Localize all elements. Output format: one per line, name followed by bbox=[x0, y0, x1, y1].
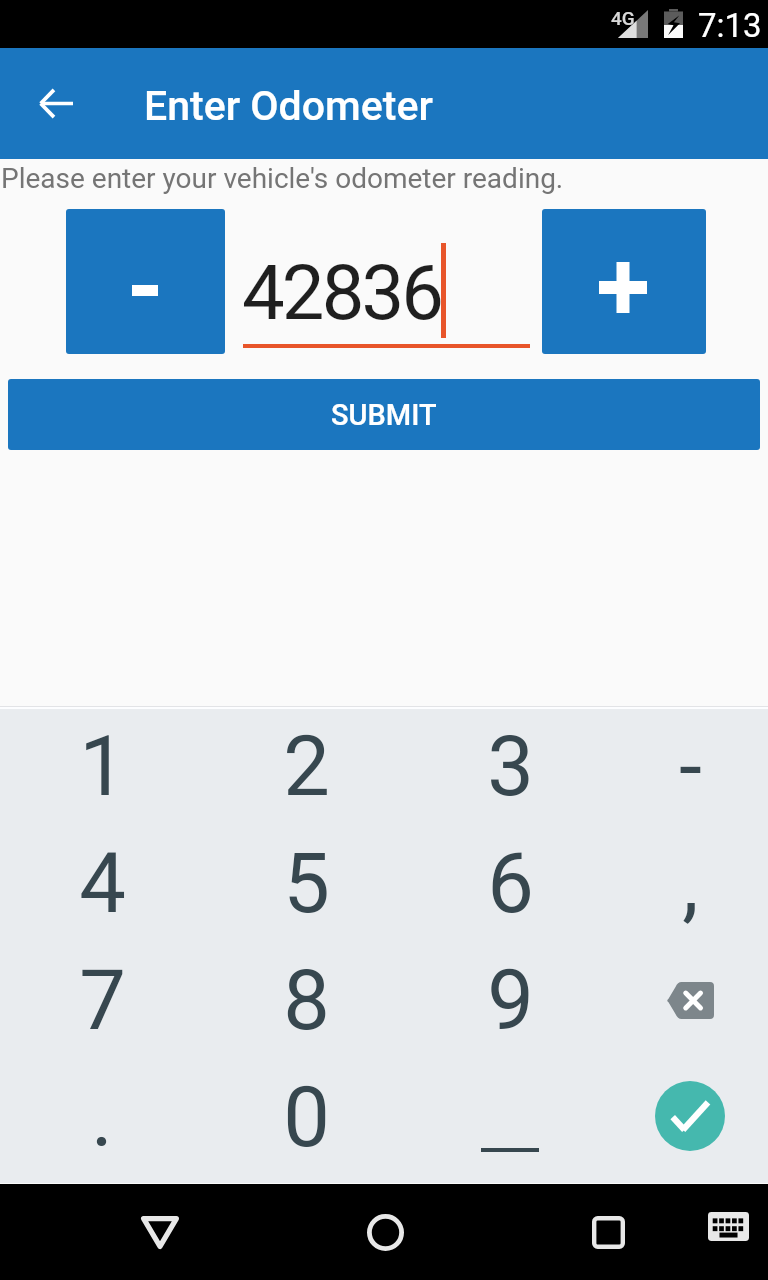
button[interactable] bbox=[408, 827, 594, 945]
button[interactable] bbox=[408, 709, 594, 827]
button[interactable] bbox=[594, 827, 768, 945]
staticText: 8 bbox=[283, 952, 330, 1049]
button[interactable] bbox=[204, 945, 408, 1063]
staticText: 5 bbox=[283, 835, 330, 932]
button[interactable] bbox=[0, 709, 204, 827]
button[interactable]: Decrease bbox=[66, 209, 225, 354]
button[interactable] bbox=[594, 945, 768, 1063]
button[interactable] bbox=[0, 827, 204, 945]
staticText: Please enter your vehicle's odometer rea… bbox=[1, 162, 564, 195]
staticText: - bbox=[679, 718, 702, 815]
staticText: 6 bbox=[487, 835, 534, 932]
staticText: 3 bbox=[487, 718, 534, 815]
staticText: . bbox=[91, 1069, 113, 1166]
button[interactable]: Switch keyboard bbox=[688, 1184, 768, 1264]
button[interactable]: Recent apps bbox=[558, 1184, 658, 1280]
staticText: , bbox=[682, 835, 699, 932]
button[interactable] bbox=[408, 1063, 594, 1183]
button[interactable]: Backspace bbox=[666, 982, 714, 1019]
staticText: Enter Odometer bbox=[144, 82, 433, 130]
button[interactable]: Back bbox=[110, 1184, 210, 1280]
staticText: 2 bbox=[283, 718, 330, 815]
staticText: 4 bbox=[79, 835, 126, 932]
staticText: 1 bbox=[79, 718, 126, 815]
button[interactable] bbox=[204, 709, 408, 827]
button[interactable] bbox=[408, 945, 594, 1063]
button[interactable]: Home bbox=[335, 1184, 435, 1280]
staticText: 7:13 bbox=[698, 6, 762, 45]
button[interactable]: Done bbox=[655, 1081, 725, 1151]
staticText: 9 bbox=[487, 952, 534, 1049]
button[interactable] bbox=[204, 1063, 408, 1183]
button[interactable] bbox=[0, 945, 204, 1063]
staticText: 7 bbox=[79, 952, 126, 1049]
button[interactable] bbox=[594, 709, 768, 827]
button[interactable] bbox=[594, 1063, 768, 1183]
button[interactable]: Increase bbox=[542, 209, 706, 354]
button[interactable] bbox=[204, 827, 408, 945]
staticText: 0 bbox=[283, 1069, 330, 1166]
button[interactable]: Navigate up bbox=[0, 48, 112, 159]
staticText: 42836 bbox=[242, 248, 442, 337]
staticText: SUBMIT bbox=[331, 398, 437, 432]
staticText: 4G bbox=[611, 7, 635, 29]
button[interactable] bbox=[0, 1063, 204, 1183]
button[interactable]: SUBMIT bbox=[8, 379, 760, 450]
